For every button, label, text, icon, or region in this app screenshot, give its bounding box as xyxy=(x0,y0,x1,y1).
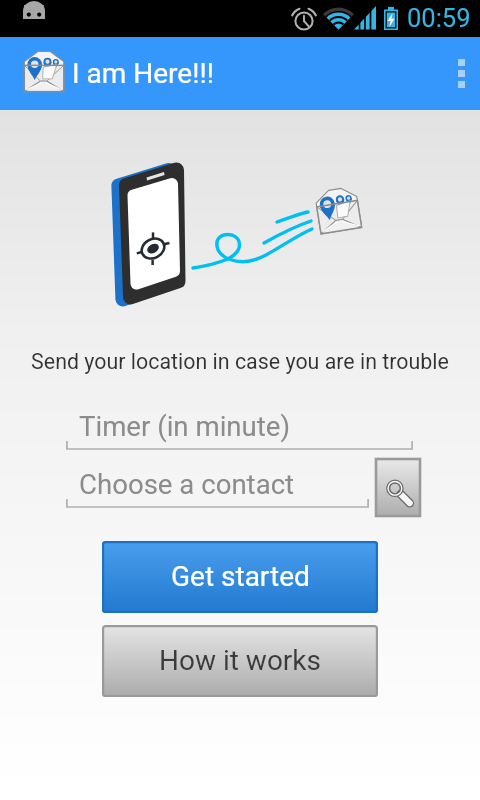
button[interactable]: Choose a contact xyxy=(66,464,369,508)
button[interactable]: How it works xyxy=(102,625,378,697)
staticText: Send your location in case you are in tr… xyxy=(0,349,480,374)
button[interactable]: Get started xyxy=(102,541,378,613)
staticText: I am Here!!! xyxy=(72,57,214,90)
staticText: Timer (in minute) xyxy=(79,410,291,442)
button[interactable]: Timer (in minute) xyxy=(66,406,413,450)
button[interactable]: More options xyxy=(440,37,480,110)
button[interactable]: Search contact xyxy=(376,459,420,516)
staticText: 00:59 xyxy=(407,3,471,33)
staticText: Choose a contact xyxy=(79,468,295,500)
staticText: Get started xyxy=(171,560,310,593)
staticText: How it works xyxy=(159,644,321,677)
